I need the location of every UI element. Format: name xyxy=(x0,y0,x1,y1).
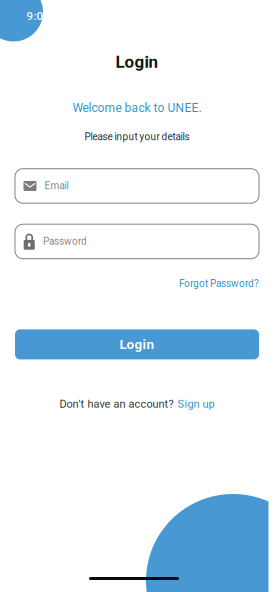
staticText: Login xyxy=(119,336,154,352)
staticText: Sign up xyxy=(177,397,214,410)
staticText: Password xyxy=(43,236,87,247)
staticText: Don't have an account? xyxy=(59,397,173,410)
button[interactable]: Email xyxy=(15,169,259,203)
staticText: Please input your details xyxy=(84,131,189,143)
button[interactable]: Sign up xyxy=(177,397,214,410)
staticText: Login xyxy=(115,52,158,72)
staticText: Forgot Password? xyxy=(179,278,259,289)
staticText: 9:04 xyxy=(26,9,50,23)
button[interactable]: Password xyxy=(15,224,259,259)
button[interactable]: Forgot Password? xyxy=(179,278,259,289)
button[interactable]: Login xyxy=(15,329,259,359)
staticText: Welcome back to UNEE. xyxy=(72,101,201,115)
staticText: Email xyxy=(44,180,68,192)
